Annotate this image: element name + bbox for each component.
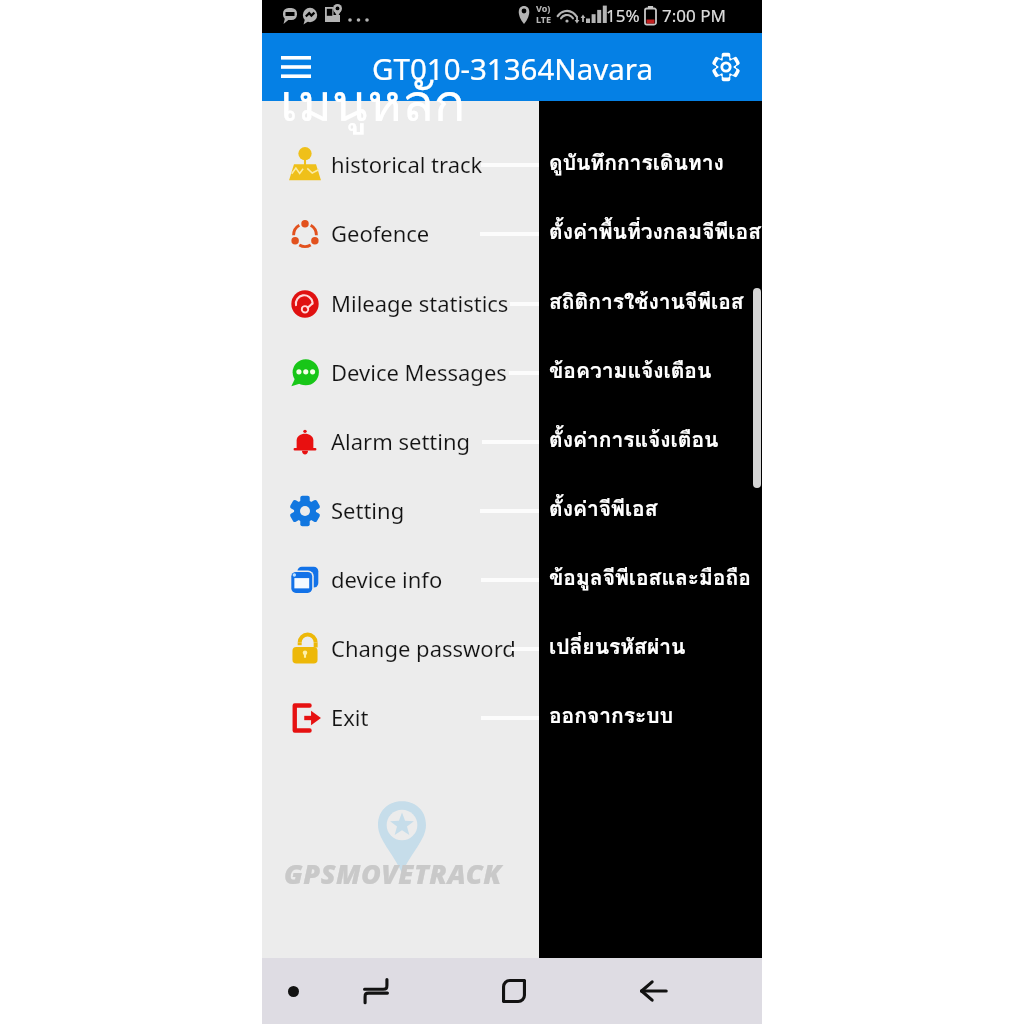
button[interactable] — [262, 619, 539, 679]
button[interactable] — [262, 481, 539, 541]
staticText: ดูบันทึกการเดินทาง — [549, 146, 724, 179]
button[interactable] — [262, 204, 539, 264]
staticText: 15% — [606, 4, 640, 27]
staticText: Vo) LTE — [536, 2, 552, 25]
staticText: เมนูหลัก — [280, 61, 466, 144]
button[interactable]: Settings — [702, 43, 750, 91]
staticText: ออกจากระบบ — [549, 699, 673, 732]
staticText: historical track — [331, 149, 483, 179]
staticText: ตั้งค่าพื้นที่วงกลมจีพีเอส — [549, 215, 761, 248]
staticText: GT010-31364Navara — [372, 48, 654, 88]
staticText: Setting — [331, 495, 405, 525]
button[interactable] — [262, 688, 539, 748]
button[interactable] — [262, 550, 539, 610]
staticText: ข้อความแจ้งเตือน — [549, 354, 712, 387]
staticText: Alarm setting — [331, 426, 471, 456]
button[interactable]: Home — [490, 967, 538, 1015]
button[interactable] — [262, 274, 539, 334]
staticText: Exit — [331, 702, 369, 732]
staticText: GPSMOVETRACK — [284, 855, 502, 892]
button[interactable]: Recent apps — [352, 967, 400, 1015]
button[interactable]: Back — [629, 967, 677, 1015]
staticText: Change password — [331, 633, 516, 663]
staticText: ตั้งค่าจีพีเอส — [549, 492, 658, 525]
staticText: Device Messages — [331, 357, 507, 387]
staticText: ตั้งค่าการแจ้งเตือน — [549, 423, 719, 456]
button[interactable]: Open navigation menu — [272, 43, 320, 91]
staticText: 7:00 PM — [662, 4, 726, 27]
staticText: device info — [331, 564, 443, 594]
staticText: สถิติการใช้งานจีพีเอส — [549, 285, 744, 318]
button[interactable] — [262, 135, 539, 195]
staticText: เปลี่ยนรหัสผ่าน — [549, 630, 686, 663]
button[interactable] — [262, 412, 539, 472]
staticText: Geofence — [331, 218, 430, 248]
button[interactable]: Notifications dot — [269, 967, 317, 1015]
button[interactable] — [262, 343, 539, 403]
staticText: ข้อมูลจีพีเอสและมือถือ — [549, 561, 751, 594]
staticText: Mileage statistics — [331, 288, 509, 318]
